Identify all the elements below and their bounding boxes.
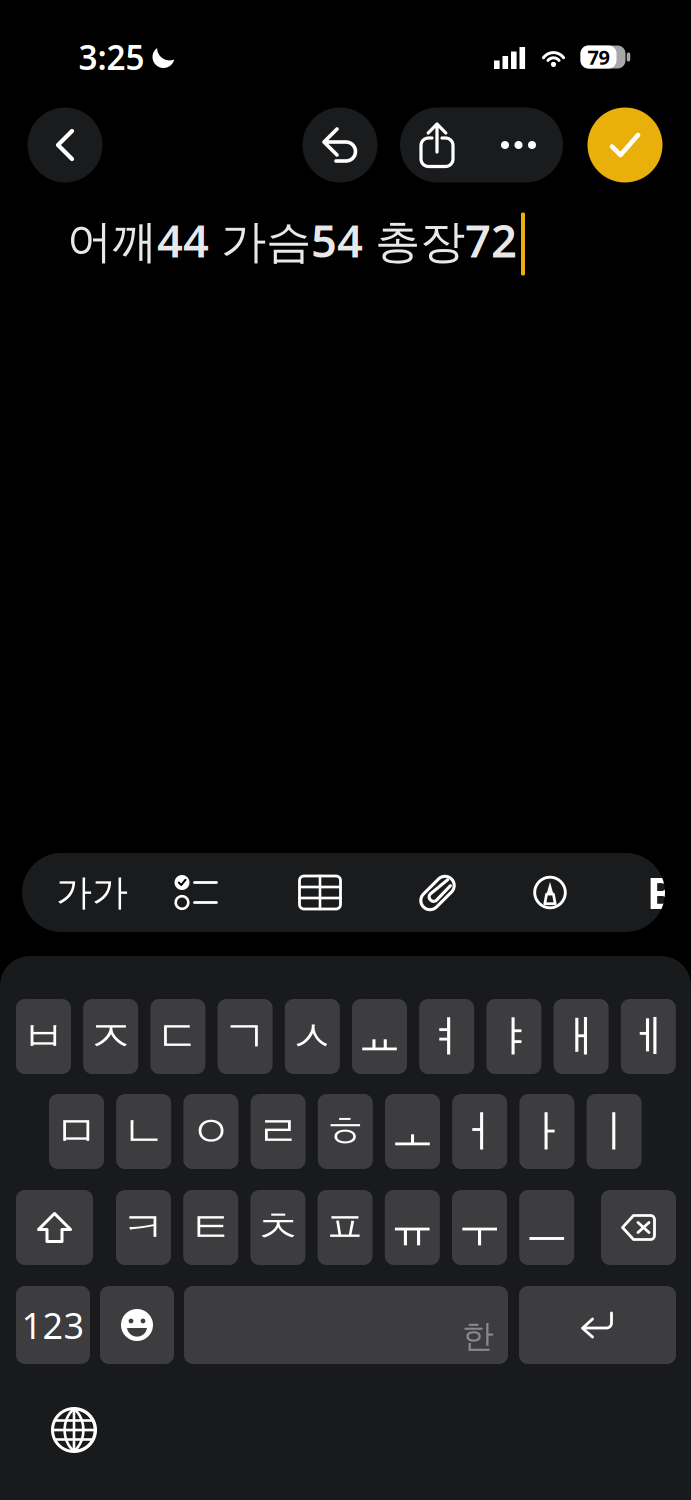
- button[interactable]: ㅕ: [419, 999, 474, 1074]
- button[interactable]: 가가: [46, 853, 138, 932]
- button[interactable]: Switch keyboard: [42, 1398, 106, 1462]
- button[interactable]: ㄴ: [116, 1094, 171, 1169]
- button[interactable]: ㄹ: [251, 1094, 306, 1169]
- button[interactable]: ㅂ: [16, 999, 71, 1074]
- staticText: ㅈ: [89, 1009, 133, 1063]
- button[interactable]: Done: [587, 107, 662, 182]
- staticText: ㅡ: [525, 1200, 569, 1254]
- staticText: ㅁ: [54, 1104, 98, 1158]
- staticText: ㅛ: [357, 1009, 401, 1063]
- staticText: 가가: [56, 870, 128, 915]
- button[interactable]: ㅌ: [183, 1190, 238, 1265]
- staticText: ㅐ: [559, 1009, 603, 1063]
- button[interactable]: [100, 1286, 174, 1364]
- button[interactable]: 123: [16, 1286, 90, 1364]
- staticText: ㅏ: [525, 1104, 569, 1158]
- staticText: ㅔ: [626, 1009, 670, 1063]
- staticText: ㅂ: [21, 1009, 65, 1063]
- button[interactable]: ㅐ: [554, 999, 609, 1074]
- button[interactable]: ㅋ: [116, 1190, 171, 1265]
- staticText: ㅗ: [390, 1104, 434, 1158]
- button[interactable]: ㅅ: [285, 999, 340, 1074]
- staticText: ㄷ: [156, 1009, 200, 1063]
- staticText: ㅣ: [592, 1104, 636, 1158]
- staticText: 한: [462, 1317, 494, 1356]
- button[interactable]: ㅍ: [318, 1190, 373, 1265]
- button[interactable]: ㅜ: [452, 1190, 507, 1265]
- button[interactable]: ㄱ: [218, 999, 273, 1074]
- button[interactable]: ㅏ: [519, 1094, 574, 1169]
- staticText: ㄱ: [223, 1009, 267, 1063]
- button[interactable]: ㅊ: [250, 1190, 305, 1265]
- button[interactable]: [519, 1286, 676, 1364]
- button[interactable]: [601, 1190, 676, 1265]
- staticText: B: [647, 864, 675, 921]
- staticText: ㄹ: [256, 1104, 300, 1158]
- staticText: ㅊ: [256, 1200, 300, 1254]
- button[interactable]: Checklist: [156, 853, 236, 932]
- button[interactable]: ㅇ: [183, 1094, 238, 1169]
- button[interactable]: Share: [400, 107, 474, 182]
- staticText: ㅠ: [390, 1200, 434, 1254]
- button[interactable]: ㅣ: [587, 1094, 642, 1169]
- button[interactable]: More: [474, 107, 563, 182]
- staticText: ㅅ: [290, 1009, 334, 1063]
- button[interactable]: ㄷ: [150, 999, 205, 1074]
- staticText: ㅑ: [492, 1009, 536, 1063]
- button[interactable]: ㅓ: [452, 1094, 507, 1169]
- staticText: ㅌ: [189, 1200, 233, 1254]
- staticText: ㅕ: [425, 1009, 469, 1063]
- staticText: ㅎ: [323, 1104, 367, 1158]
- button[interactable]: Attach: [399, 853, 479, 932]
- button[interactable]: ㅈ: [83, 999, 138, 1074]
- button[interactable]: ㅛ: [352, 999, 407, 1074]
- button[interactable]: ㅎ: [318, 1094, 373, 1169]
- button[interactable]: Undo: [302, 107, 377, 182]
- staticText: 79: [587, 44, 609, 70]
- staticText: 123: [21, 1301, 84, 1349]
- button[interactable]: Back: [27, 107, 102, 182]
- button[interactable]: Space: [184, 1286, 508, 1364]
- button[interactable]: ㅑ: [486, 999, 541, 1074]
- staticText: ㅋ: [121, 1200, 165, 1254]
- button[interactable]: [16, 1190, 93, 1265]
- staticText: 3:25: [78, 35, 144, 79]
- button[interactable]: ㅗ: [385, 1094, 440, 1169]
- button[interactable]: Markup: [510, 853, 590, 932]
- button[interactable]: ㅡ: [519, 1190, 574, 1265]
- button[interactable]: ㅔ: [621, 999, 676, 1074]
- staticText: ㅍ: [323, 1200, 367, 1254]
- button[interactable]: ㅁ: [49, 1094, 104, 1169]
- staticText: ㅇ: [189, 1104, 233, 1158]
- staticText: ㅓ: [458, 1104, 502, 1158]
- button[interactable]: Table: [280, 853, 360, 932]
- button[interactable]: ㅠ: [385, 1190, 440, 1265]
- staticText: 어깨44 가슴54 총장72: [67, 210, 517, 270]
- staticText: ㅜ: [457, 1200, 501, 1254]
- staticText: ㄴ: [122, 1104, 166, 1158]
- button[interactable]: Bold: [639, 853, 683, 932]
